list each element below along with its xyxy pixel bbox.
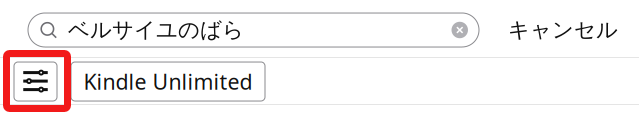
- button[interactable]: Clear search text: [451, 22, 479, 38]
- staticText: Kindle Unlimited: [83, 67, 252, 96]
- button[interactable]: Filters: [14, 62, 57, 101]
- button[interactable]: キャンセル: [508, 13, 618, 47]
- staticText: ベルサイユのばら: [68, 17, 244, 43]
- button[interactable]: Kindle Unlimited: [71, 62, 265, 101]
- staticText: キャンセル: [508, 17, 618, 43]
